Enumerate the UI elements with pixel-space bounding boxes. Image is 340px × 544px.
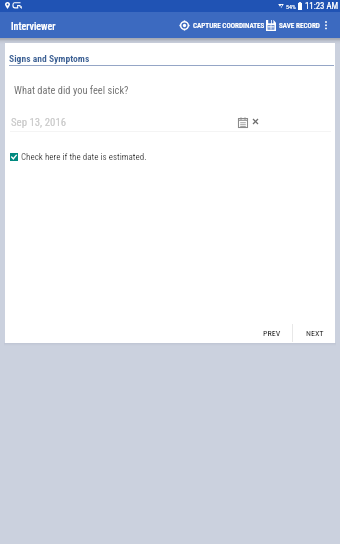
button[interactable]: More options [318, 12, 333, 38]
staticText: Check here if the date is estimated. [21, 152, 147, 163]
staticText: What date did you feel sick? [14, 84, 129, 96]
staticText: Interviewer [11, 21, 56, 33]
button[interactable]: Check here if the date is estimated. [7, 148, 150, 166]
staticText: SAVE RECORD [279, 21, 320, 29]
staticText: CAPTURE COORDINATES [193, 21, 265, 29]
button[interactable]: PREV [252, 321, 292, 346]
button[interactable]: Pick date [235, 114, 251, 130]
button[interactable]: NEXT [295, 321, 335, 346]
button[interactable]: CAPTURE COORDINATES [176, 12, 268, 38]
staticText: NEXT [306, 329, 324, 338]
staticText: 11:23 AM [305, 1, 339, 11]
staticText: PREV [263, 329, 281, 338]
button[interactable]: SAVE RECORD [263, 12, 323, 38]
button[interactable]: Clear date [248, 114, 262, 128]
staticText: 54% [286, 3, 296, 10]
staticText: Signs and Symptoms [9, 53, 90, 64]
staticText: Sep 13, 2016 [11, 116, 67, 129]
